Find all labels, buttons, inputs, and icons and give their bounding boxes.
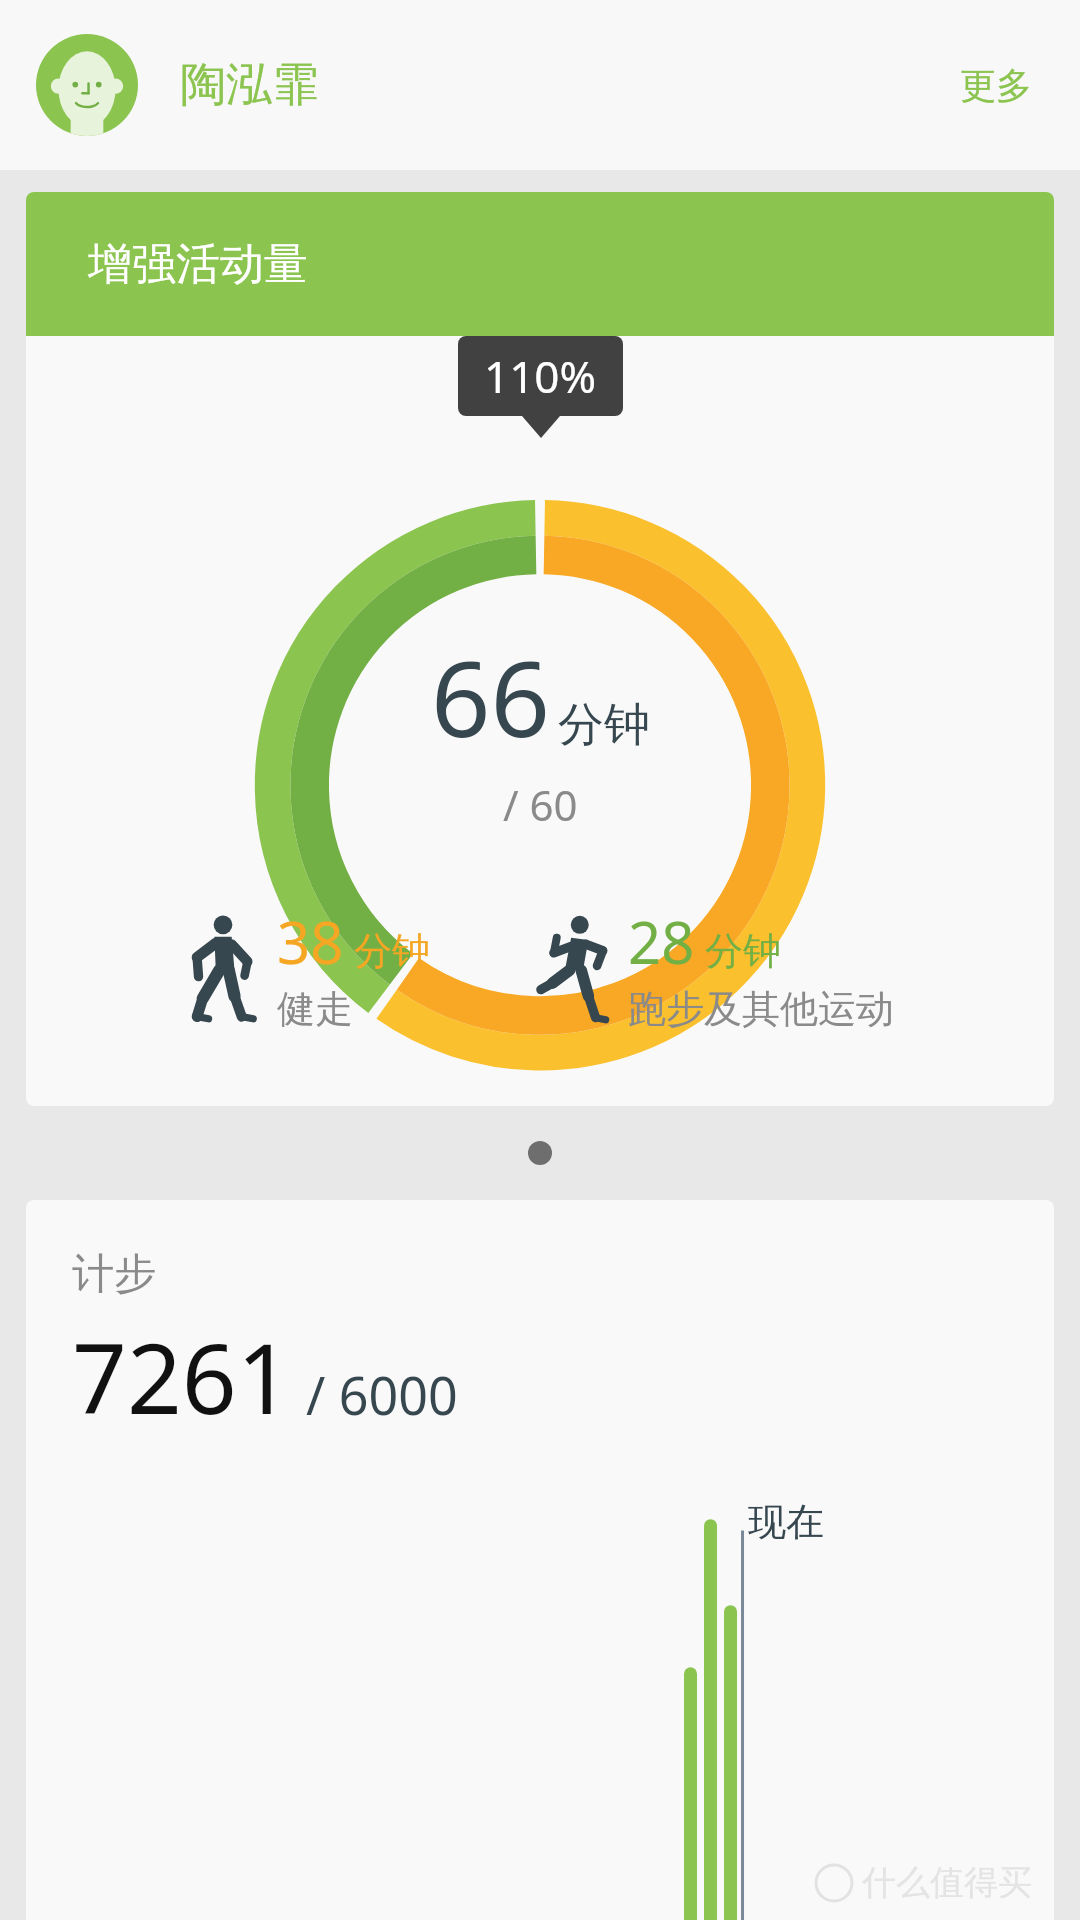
staticText: 分钟 [354,927,430,975]
staticText: 7261 [72,1311,292,1442]
button[interactable]: 计步 [26,1200,1054,1920]
staticText: 66 [431,626,550,768]
staticText: 38 [277,902,344,981]
staticText: 28 [628,902,695,981]
staticText: 计步 [72,1248,156,1301]
staticText: 跑步及其他运动 [628,985,894,1033]
staticText: 现在 [748,1498,824,1546]
staticText: 增强活动量 [88,237,308,292]
staticText: / 60 [503,776,578,833]
staticText: 更多 [960,63,1032,108]
button[interactable]: Profile avatar [36,34,138,136]
button[interactable]: 增强活动量 [26,192,1054,1106]
staticText: 什么值得买 [862,1861,1032,1904]
staticText: 分钟 [558,696,650,754]
staticText: 陶泓霏 [180,56,318,114]
staticText: 健走 [277,985,353,1033]
staticText: / 6000 [306,1359,458,1430]
button[interactable]: 更多 [948,49,1044,122]
staticText: 110% [484,346,597,406]
staticText: 分钟 [705,927,781,975]
